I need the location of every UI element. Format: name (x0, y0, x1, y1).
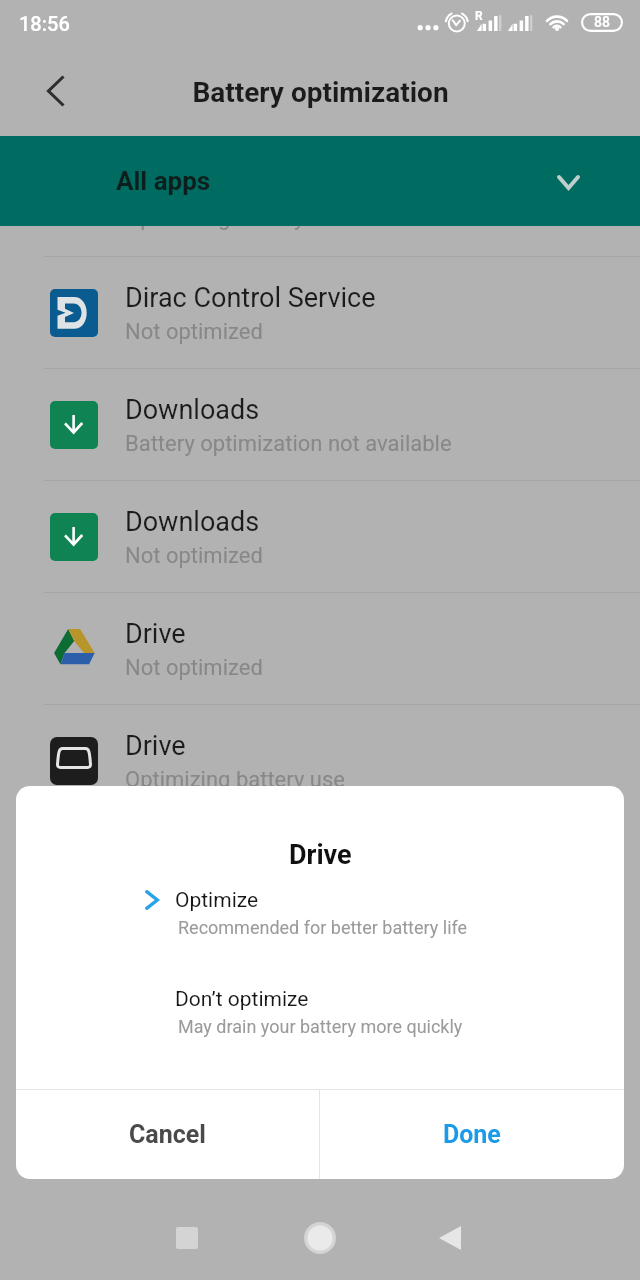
staticText: 88 (594, 14, 610, 30)
staticText: Not optimized (125, 543, 263, 569)
staticText: Drive (125, 730, 186, 762)
button[interactable]: Back (418, 1206, 482, 1270)
button[interactable]: Optimize (16, 887, 624, 969)
staticText: Dirac Control Service (125, 282, 376, 314)
button[interactable]: Don’t optimize (16, 986, 624, 1068)
staticText: Battery optimization (192, 76, 449, 109)
button[interactable]: Home (288, 1206, 352, 1270)
button[interactable]: Navigate up (20, 46, 90, 136)
staticText: Drive (289, 839, 352, 871)
staticText: May drain your battery more quickly (178, 1016, 463, 1037)
button[interactable]: Downloads (0, 481, 640, 592)
button[interactable]: Drive (0, 593, 640, 704)
staticText: Downloads (125, 506, 260, 538)
button[interactable]: Cancel (16, 1089, 319, 1179)
staticText: Don’t optimize (175, 987, 309, 1012)
staticText: Recommended for better battery life (178, 917, 468, 938)
button[interactable]: All apps (0, 136, 640, 226)
staticText: 18:56 (19, 12, 70, 35)
staticText: Not optimized (125, 655, 263, 681)
button[interactable]: Done (320, 1089, 624, 1179)
staticText: Battery optimization not available (125, 431, 452, 457)
staticText: Optimizing battery use (125, 767, 345, 793)
button[interactable]: Dirac Control Service (0, 257, 640, 368)
staticText: Cancel (129, 1120, 206, 1149)
button[interactable]: Downloads (0, 369, 640, 480)
staticText: Downloads (125, 394, 260, 426)
staticText: Not optimized (125, 319, 263, 345)
staticText: Drive (125, 618, 186, 650)
staticText: Optimizing battery use (125, 226, 345, 231)
staticText: Optimize (175, 888, 259, 913)
staticText: All apps (116, 166, 211, 196)
button[interactable]: Recent apps (155, 1206, 219, 1270)
staticText: R (475, 9, 483, 23)
staticText: Done (443, 1120, 501, 1149)
button[interactable]: Drive (0, 705, 640, 816)
